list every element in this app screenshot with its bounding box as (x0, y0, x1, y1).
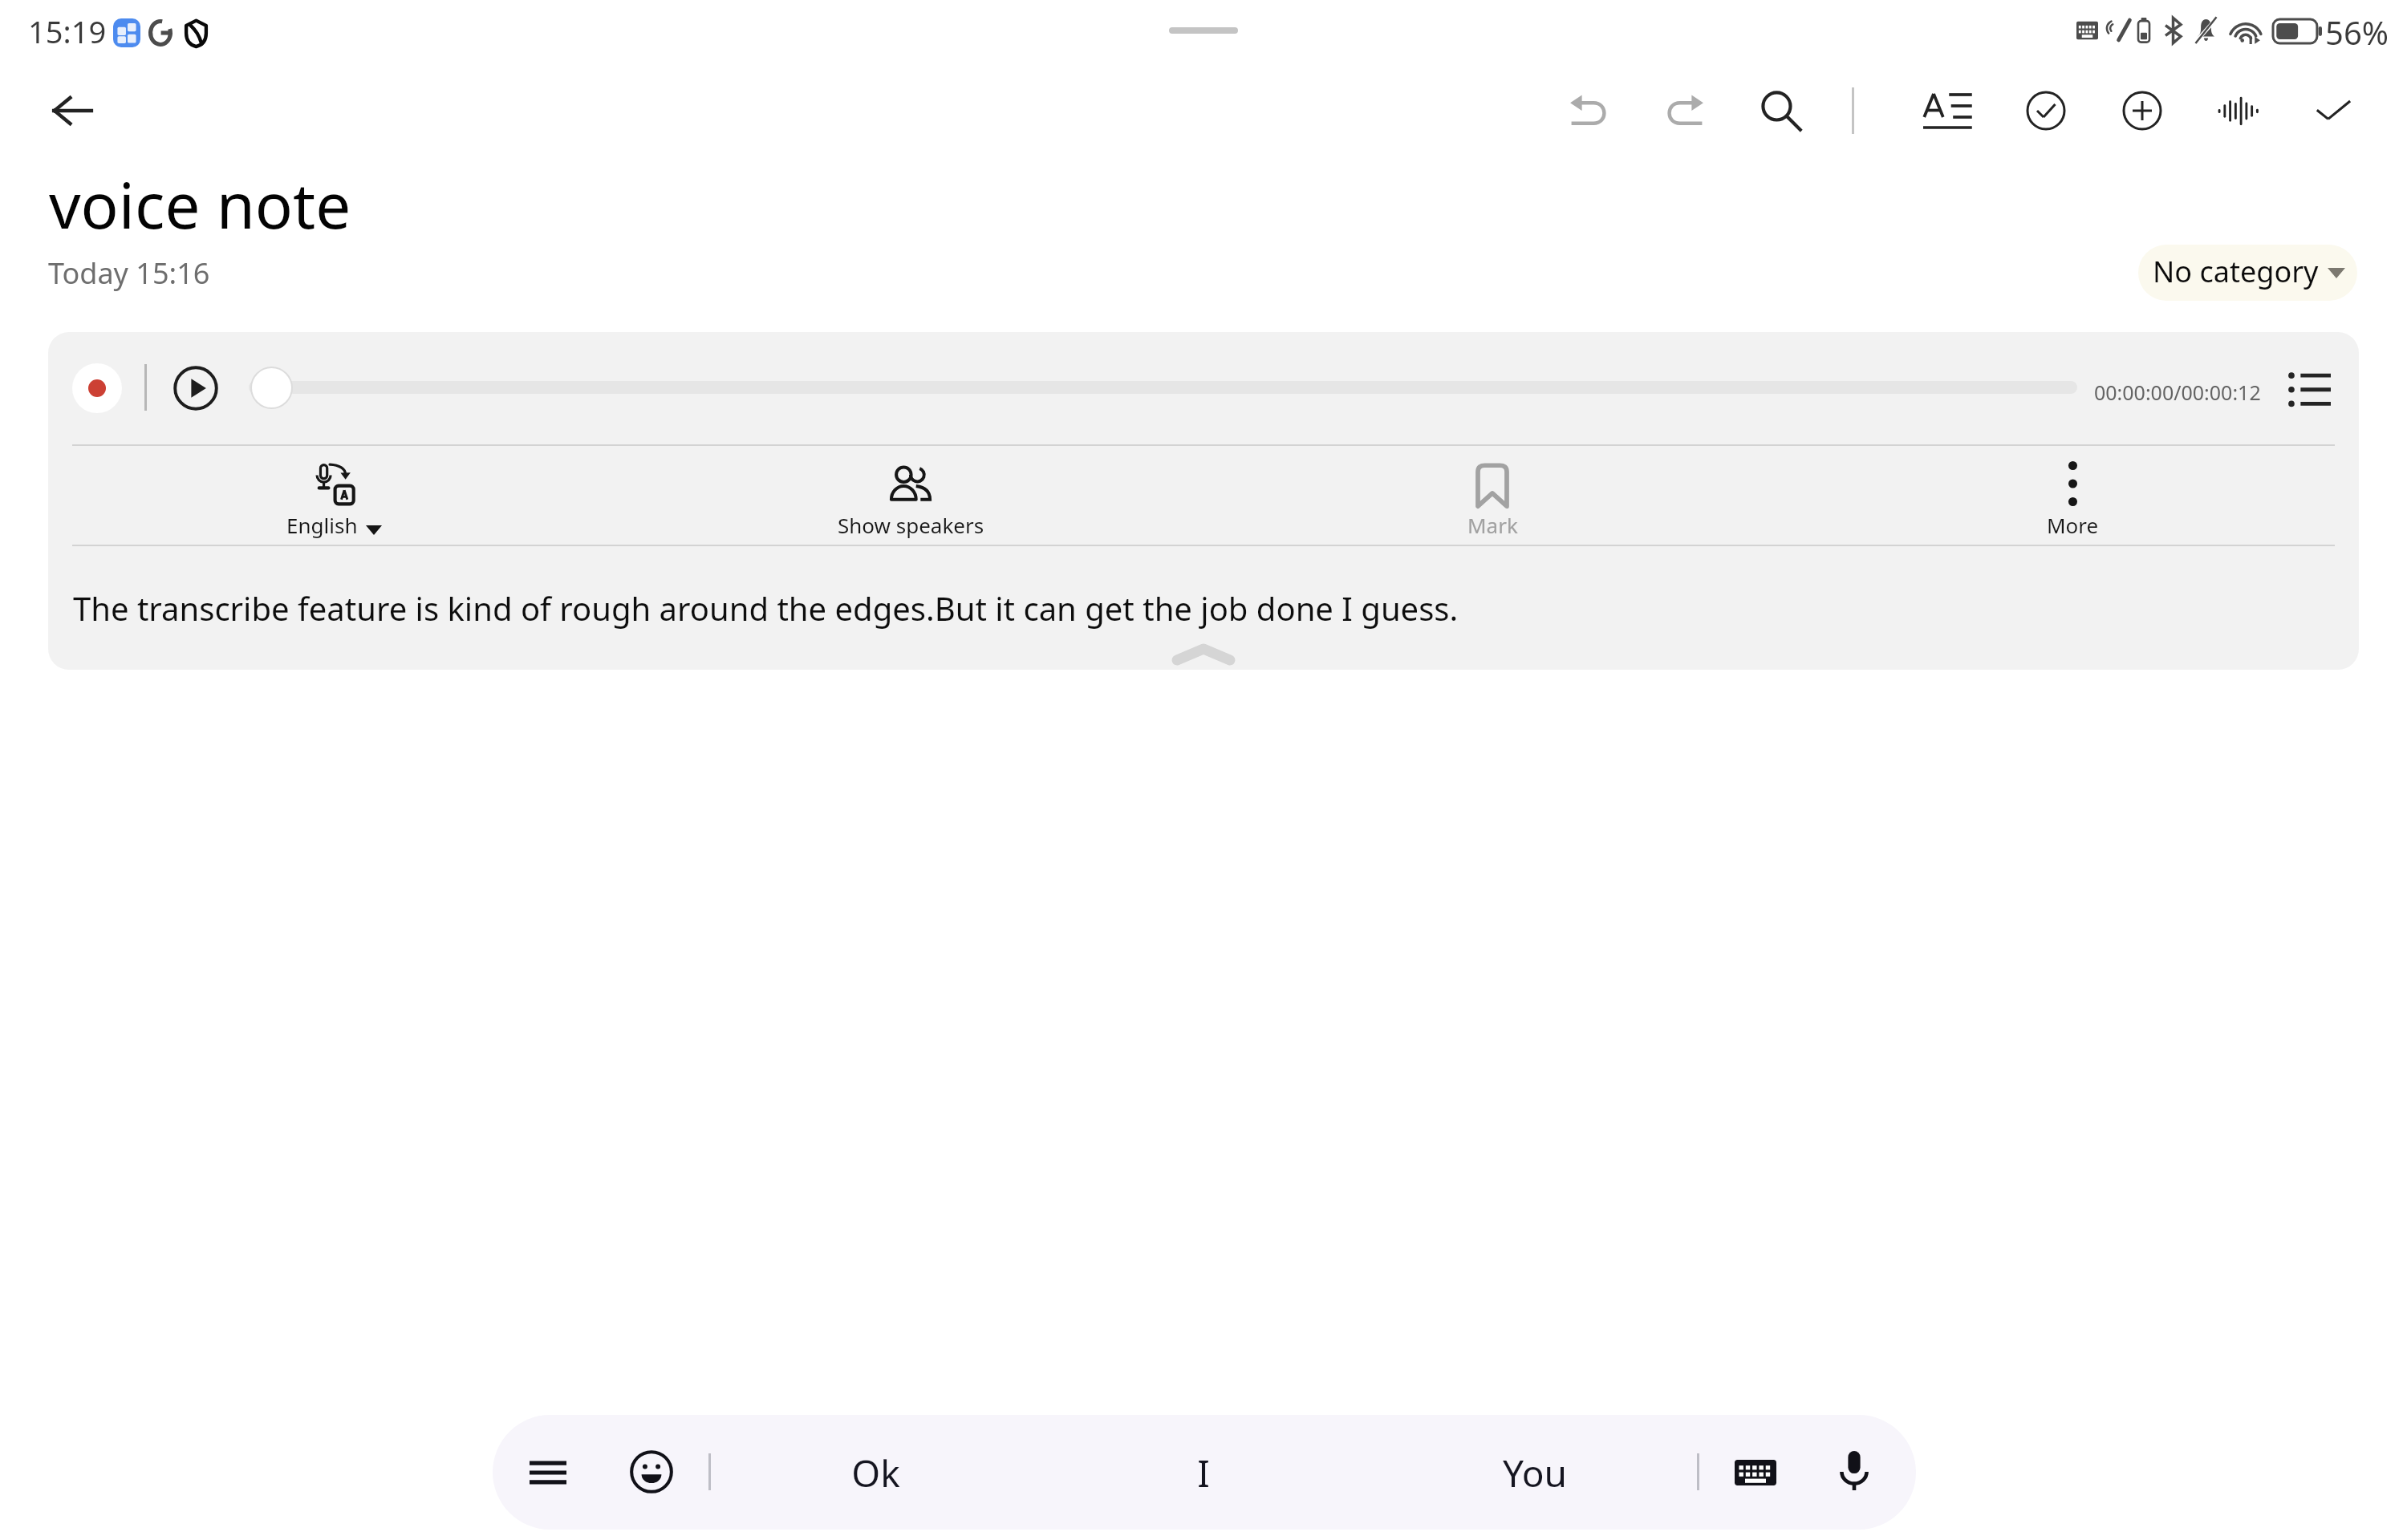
button[interactable]: Insert (2108, 76, 2177, 145)
button[interactable]: Undo (1556, 75, 1625, 144)
button[interactable]: Checklist (2011, 76, 2080, 145)
button[interactable]: Voice recording (2204, 76, 2273, 145)
staticText: The transcribe feature is kind of rough … (73, 586, 1459, 630)
staticText: No category (2153, 252, 2319, 291)
button[interactable]: Back (38, 76, 107, 145)
button[interactable]: I (1071, 1436, 1336, 1510)
staticText: Mark (1467, 511, 1518, 539)
staticText: 00:00:00/00:00:12 (2094, 379, 2261, 406)
button[interactable]: Seek (250, 367, 293, 409)
staticText: I (1197, 1448, 1210, 1498)
button[interactable]: Save (2299, 76, 2368, 145)
staticText: Ok (851, 1448, 900, 1498)
button[interactable]: Emoji (623, 1443, 680, 1501)
button[interactable]: Ok (743, 1436, 1008, 1510)
button[interactable]: Bookmark list (2283, 364, 2335, 415)
button[interactable]: Search (1747, 76, 1816, 145)
button[interactable]: No category (2138, 245, 2357, 301)
staticText: Today 15:16 (48, 253, 210, 293)
staticText: 56% (2325, 10, 2389, 54)
staticText: You (1503, 1448, 1567, 1498)
button[interactable]: Keyboard (1727, 1444, 1784, 1501)
staticText: More (2047, 511, 2099, 539)
staticText: 15:19 (28, 10, 107, 52)
button[interactable]: Show speakers (806, 451, 1015, 544)
button[interactable]: You (1402, 1436, 1667, 1510)
button[interactable]: Record (72, 363, 122, 413)
button[interactable]: English (229, 451, 438, 544)
button[interactable]: Text style (1914, 76, 1983, 145)
button[interactable]: Mark (1388, 451, 1597, 544)
button[interactable]: Play (173, 365, 219, 411)
button[interactable]: Menu (519, 1444, 577, 1501)
staticText: voice note (49, 162, 351, 247)
button[interactable]: More (1968, 451, 2177, 544)
button[interactable]: Redo (1649, 75, 1718, 144)
button[interactable]: Voice input (1825, 1442, 1883, 1500)
staticText: Show speakers (838, 511, 984, 539)
staticText: English (286, 511, 358, 539)
